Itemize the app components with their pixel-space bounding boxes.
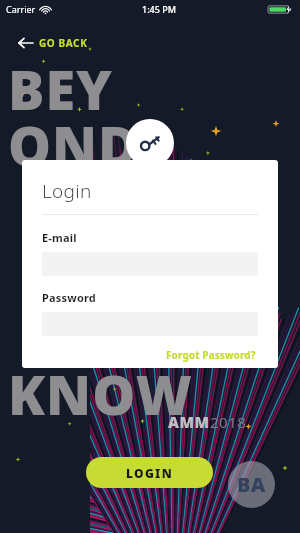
staticText: KNOW <box>8 357 193 431</box>
button[interactable]: Forgot Password? <box>164 346 258 364</box>
staticText: AMM <box>168 412 210 432</box>
staticText: 1:45 PM <box>142 3 176 15</box>
button[interactable]: GO BACK <box>14 33 92 53</box>
staticText: LOGIN <box>126 465 173 481</box>
staticText: OND <box>8 108 139 182</box>
staticText: 2018 <box>210 412 247 432</box>
staticText: BEY <box>8 52 113 126</box>
staticText: GO BACK <box>39 36 88 50</box>
staticText: Forgot Password? <box>166 348 256 362</box>
staticText: Password <box>42 290 97 305</box>
staticText: Carrier <box>6 3 36 15</box>
staticText: Login <box>42 178 92 204</box>
button[interactable]: LOGIN <box>86 457 213 488</box>
staticText: BA <box>237 471 266 498</box>
button[interactable]: BA account <box>228 461 275 508</box>
staticText: E-mail <box>42 230 77 245</box>
